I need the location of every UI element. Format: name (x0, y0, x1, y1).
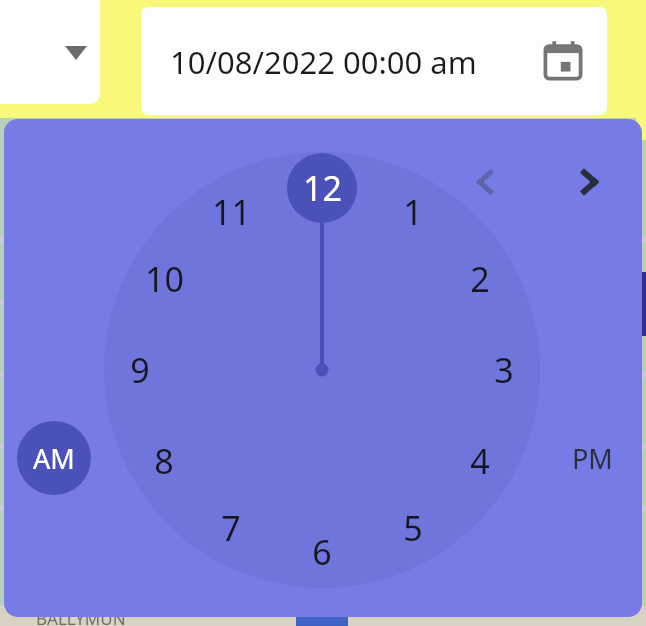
staticText: 1 (403, 189, 423, 235)
staticText: 10/08/2022 00:00 am (170, 41, 477, 83)
button[interactable]: 4 (445, 426, 515, 496)
button[interactable]: 10 (129, 244, 199, 314)
staticText: PM (572, 440, 613, 477)
staticText: 11 (212, 189, 251, 235)
button[interactable]: 3 (469, 335, 539, 405)
staticText: 6 (312, 529, 332, 575)
button[interactable]: 6 (287, 517, 357, 587)
button[interactable]: 10/08/2022 00:00 am (141, 7, 607, 115)
staticText: 5 (403, 505, 423, 551)
staticText: 3 (494, 347, 514, 393)
button[interactable]: 2 (445, 244, 515, 314)
staticText: 9 (130, 347, 150, 393)
other: Pick date (541, 39, 585, 83)
staticText: 12 (303, 165, 342, 211)
button[interactable]: 11 (196, 177, 266, 247)
button[interactable]: 12 (287, 153, 357, 223)
button[interactable]: 7 (196, 493, 266, 563)
button[interactable]: Previous (459, 156, 511, 208)
button[interactable]: 8 (129, 426, 199, 496)
button[interactable]: Next (563, 156, 615, 208)
button[interactable]: AM (17, 421, 91, 495)
button[interactable]: Open dropdown (0, 0, 100, 104)
other: Open dropdown (65, 46, 87, 60)
staticText: 4 (470, 438, 490, 484)
button[interactable]: PM (555, 421, 629, 495)
staticText: AM (33, 440, 75, 477)
button[interactable]: 9 (105, 335, 175, 405)
staticText: 7 (221, 505, 241, 551)
button[interactable]: 1 (378, 177, 448, 247)
button[interactable]: 5 (378, 493, 448, 563)
staticText: 8 (154, 438, 174, 484)
staticText: BALLYMUN (36, 607, 126, 626)
staticText: 2 (470, 256, 490, 302)
staticText: 10 (145, 256, 184, 302)
